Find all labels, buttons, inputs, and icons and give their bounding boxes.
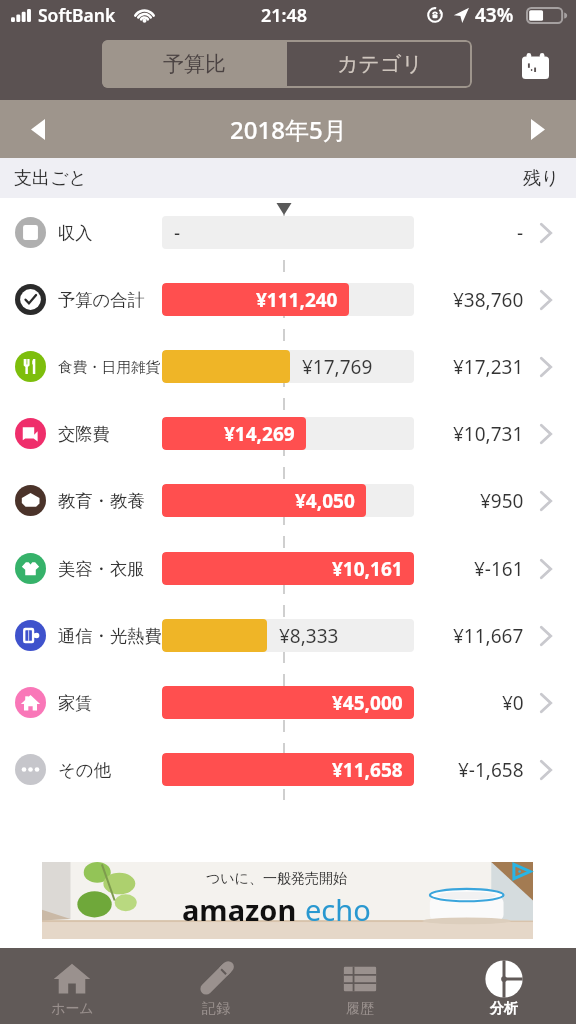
button[interactable]: 通信・光熱費 (0, 619, 576, 652)
staticText: 教育・教養 (58, 490, 145, 512)
staticText: ¥0 (502, 690, 524, 716)
staticText: 履歴 (346, 1000, 374, 1018)
button[interactable]: 分析 (432, 948, 576, 1024)
staticText: 予算の合計 (58, 289, 145, 311)
staticText: ¥111,240 (256, 287, 338, 313)
button[interactable]: 収入 (0, 216, 576, 249)
staticText: カテゴリ (337, 51, 423, 77)
staticText: ¥11,658 (332, 757, 403, 783)
staticText: 43% (475, 2, 514, 28)
staticText: ¥-161 (474, 556, 524, 582)
button[interactable]: 教育・教養 (0, 484, 576, 517)
button[interactable]: 家賃 (0, 686, 576, 719)
staticText: - (174, 220, 181, 246)
staticText: ¥17,769 (302, 354, 373, 380)
button[interactable]: 履歴 (288, 948, 432, 1024)
staticText: 残り (523, 167, 560, 190)
staticText: 収入 (58, 222, 93, 244)
staticText: ¥4,050 (295, 488, 355, 514)
button[interactable]: ついに、一般発売開始 (42, 862, 533, 939)
staticText: ¥38,760 (453, 287, 524, 313)
button[interactable]: Next month (518, 109, 558, 149)
staticText: 食費・日用雑貨 (58, 358, 161, 376)
staticText: 記録 (202, 1000, 230, 1018)
staticText: ¥10,161 (332, 556, 403, 582)
button[interactable]: Calendar (513, 44, 557, 88)
button[interactable]: 交際費 (0, 417, 576, 450)
button[interactable]: 食費・日用雑貨 (0, 350, 576, 383)
staticText: 21:48 (261, 3, 308, 28)
staticText: 分析 (490, 1000, 518, 1018)
staticText: SoftBank (38, 3, 116, 27)
staticText: 交際費 (58, 423, 110, 445)
button[interactable]: カテゴリ (287, 40, 472, 88)
staticText: - (517, 220, 524, 246)
button[interactable]: 予算比 (102, 40, 287, 88)
button[interactable]: ホーム (0, 948, 144, 1024)
staticText: ホーム (51, 1000, 94, 1018)
button[interactable]: 美容・衣服 (0, 552, 576, 585)
staticText: ついに、一般発売開始 (206, 870, 347, 888)
staticText: amazon (182, 890, 297, 929)
staticText: 予算比 (163, 51, 226, 77)
staticText: ¥-1,658 (458, 757, 524, 783)
staticText: ¥11,667 (453, 623, 524, 649)
button[interactable]: 予算の合計 (0, 283, 576, 316)
button[interactable]: Previous month (18, 109, 58, 149)
staticText: 2018年5月 (230, 113, 347, 146)
staticText: ¥10,731 (453, 421, 524, 447)
staticText: ¥950 (480, 488, 524, 514)
staticText: echo (305, 890, 371, 929)
button[interactable]: 記録 (144, 948, 288, 1024)
staticText: 家賃 (58, 692, 93, 714)
staticText: ¥17,231 (453, 354, 524, 380)
staticText: 支出ごと (14, 167, 87, 190)
staticText: 通信・光熱費 (58, 625, 162, 647)
staticText: 美容・衣服 (58, 558, 145, 580)
staticText: ¥8,333 (279, 623, 339, 649)
staticText: ¥45,000 (332, 690, 403, 716)
staticText: ¥14,269 (224, 421, 295, 447)
button[interactable]: その他 (0, 753, 576, 786)
staticText: その他 (58, 759, 111, 781)
